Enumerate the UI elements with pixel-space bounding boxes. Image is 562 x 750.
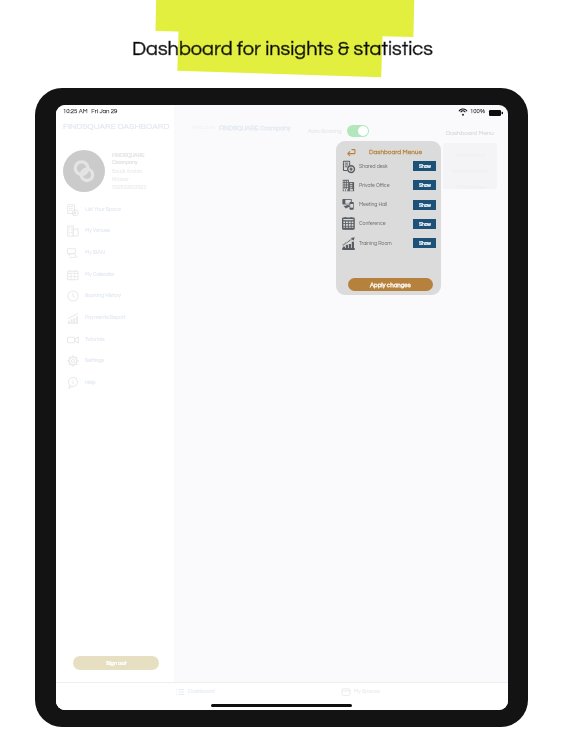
staticText: Apply changes [370,282,411,288]
button[interactable]: Settings [67,352,167,369]
button[interactable]: Sign out [73,656,159,670]
staticText: Dashboard for insights & statistics [132,39,433,60]
staticText: Training Room [359,241,392,246]
staticText: Sign out [106,660,127,666]
staticText: Settings [85,358,105,363]
staticText: 100% [470,108,485,114]
button[interactable]: Dashboard [176,685,215,698]
staticText: Welcome [192,125,215,131]
staticText: 532532623522 [112,185,147,190]
button[interactable]: Show [413,219,436,229]
button[interactable]: Private Office [342,176,437,195]
staticText: Saudi Arabia [112,169,143,174]
staticText: Dashboard Menu [446,130,494,136]
button[interactable]: Meeting Hall [342,195,437,214]
staticText: Private Office [359,183,390,188]
staticText: Tutorials [85,337,105,342]
staticText: Dashboard Menue [369,149,422,156]
staticText: Conference [359,221,386,226]
staticText: FINDSQUARE Coompany [219,125,291,131]
staticText: 10:25 AM Fri Jan 29 [63,108,118,114]
staticText: Dashboard for insights & statistics [132,39,433,60]
staticText: Show [419,203,431,208]
staticText: Show [419,164,431,169]
staticText: Payments Report [85,315,126,320]
staticText: Meeting Hall [359,202,388,207]
button[interactable]: Help [67,374,167,391]
staticText: Show [419,222,431,227]
staticText: Booking History [85,293,122,298]
button[interactable]: Show [413,161,436,171]
staticText: Help [85,380,96,385]
button[interactable]: Show [413,238,436,248]
staticText: My Calendar [85,272,115,277]
staticText: Show [419,241,431,246]
button[interactable]: Back [347,148,356,157]
staticText: FINDSQUARE Coompany [112,153,145,165]
staticText: Show [419,183,431,188]
button[interactable]: Conference [342,214,437,233]
button[interactable]: Payments Report [67,309,167,326]
button[interactable]: Apply changes [348,278,433,291]
button[interactable]: Shared desk [342,157,437,176]
staticText: My IBAN [85,250,105,255]
staticText: Shared desk [359,164,388,169]
staticText: List Your Space [85,207,121,212]
staticText: FINDSQUARE DASHBOARD [63,122,170,131]
button[interactable]: List Your Space [67,201,167,218]
button[interactable]: Booking History [67,287,167,304]
button[interactable]: Tutorials [67,331,167,348]
button[interactable]: My IBAN [67,244,167,261]
staticText: My Spaces [354,689,380,694]
button[interactable]: My Spaces [342,685,380,698]
staticText: Auto Booking [308,128,342,134]
button[interactable]: Show [413,200,436,210]
staticText: Dashboard [188,689,215,694]
staticText: My Venues [85,228,111,233]
button[interactable]: Auto Booking [308,124,369,138]
staticText: Khobar [112,177,130,182]
button[interactable]: My Calendar [67,266,167,283]
button[interactable]: Show [413,180,436,190]
button[interactable]: Training Room [342,234,437,253]
button[interactable]: My Venues [67,222,167,239]
